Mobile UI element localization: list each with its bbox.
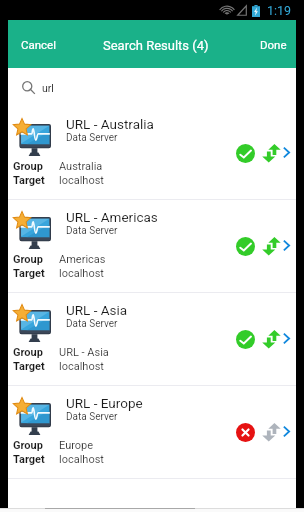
staticText: Group — [13, 160, 43, 173]
button[interactable]: Sync — [262, 144, 281, 163]
staticText: URL - Asia — [66, 302, 128, 318]
button[interactable]: Details — [283, 333, 290, 344]
button[interactable]: Sync — [262, 330, 281, 349]
button[interactable]: Status OK — [236, 237, 255, 256]
staticText: URL - Australia — [66, 116, 154, 132]
button[interactable]: Status OK — [236, 330, 255, 349]
button[interactable]: URL - Australia — [8, 107, 296, 200]
staticText: localhost — [59, 453, 104, 466]
button[interactable]: Status OK — [236, 144, 255, 163]
staticText: Cancel — [21, 38, 57, 51]
button[interactable]: Cancel — [8, 23, 70, 66]
button[interactable]: URL - Americas — [8, 200, 296, 293]
staticText: Australia — [59, 160, 103, 173]
staticText: Search Results (4) — [103, 38, 209, 53]
button[interactable]: Status error — [236, 423, 255, 442]
staticText: Target — [13, 453, 45, 466]
button[interactable]: Sync — [262, 237, 281, 256]
staticText: Target — [13, 360, 45, 373]
button[interactable]: Done — [247, 23, 296, 66]
button[interactable]: Sync — [262, 423, 281, 442]
button[interactable]: Details — [283, 426, 290, 437]
staticText: URL - Asia — [59, 346, 109, 359]
staticText: Group — [13, 439, 43, 452]
staticText: URL - Europe — [66, 395, 143, 411]
staticText: URL - Americas — [66, 209, 158, 225]
button[interactable]: Details — [283, 147, 290, 158]
button[interactable]: URL - Europe — [8, 386, 296, 479]
staticText: Europe — [59, 439, 94, 452]
staticText: Done — [260, 38, 287, 51]
staticText: Data Server — [66, 411, 118, 423]
staticText: localhost — [59, 174, 104, 187]
staticText: url — [42, 82, 54, 94]
staticText: localhost — [59, 267, 104, 280]
staticText: Group — [13, 346, 43, 359]
staticText: localhost — [59, 360, 104, 373]
button[interactable]: url — [8, 68, 296, 107]
staticText: 1:19 — [267, 3, 292, 18]
staticText: Target — [13, 267, 45, 280]
staticText: Data Server — [66, 132, 118, 144]
staticText: Data Server — [66, 225, 118, 237]
button[interactable]: Details — [283, 240, 290, 251]
button[interactable]: URL - Asia — [8, 293, 296, 386]
staticText: Group — [13, 253, 43, 266]
staticText: Americas — [59, 253, 106, 266]
staticText: Data Server — [66, 318, 118, 330]
staticText: Target — [13, 174, 45, 187]
